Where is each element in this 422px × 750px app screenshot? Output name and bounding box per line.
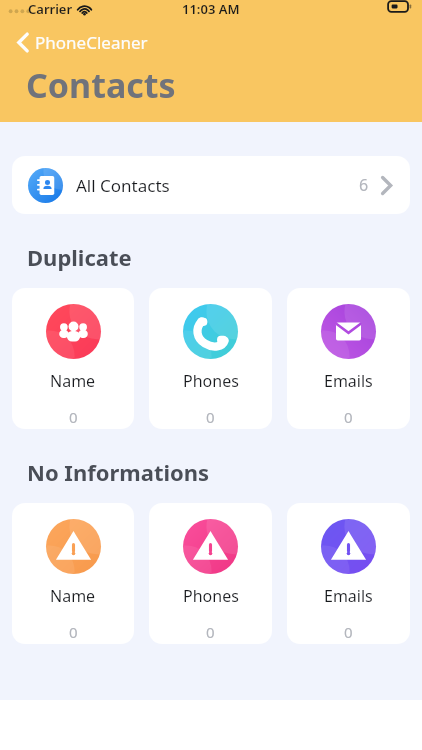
- staticText: 0: [344, 407, 353, 427]
- button[interactable]: Phones: [149, 503, 272, 644]
- staticText: 11:03 AM: [182, 0, 240, 18]
- staticText: PhoneCleaner: [35, 31, 148, 54]
- button[interactable]: Emails: [287, 288, 410, 429]
- staticText: All Contacts: [76, 174, 170, 197]
- staticText: Phones: [183, 585, 239, 607]
- staticText: 0: [206, 622, 215, 642]
- staticText: 6: [359, 174, 369, 196]
- button[interactable]: Name: [12, 288, 134, 429]
- button[interactable]: Name: [12, 503, 134, 644]
- button[interactable]: All Contacts: [12, 156, 410, 214]
- button[interactable]: Back to PhoneCleaner: [12, 29, 152, 56]
- staticText: 0: [69, 407, 78, 427]
- staticText: Name: [50, 585, 96, 607]
- button[interactable]: Phones: [149, 288, 272, 429]
- staticText: Phones: [183, 370, 239, 392]
- staticText: Emails: [324, 585, 373, 607]
- staticText: Emails: [324, 370, 373, 392]
- staticText: Contacts: [26, 62, 176, 108]
- staticText: Name: [50, 370, 96, 392]
- staticText: No Informations: [27, 457, 210, 487]
- staticText: 0: [206, 407, 215, 427]
- staticText: 0: [344, 622, 353, 642]
- staticText: 0: [69, 622, 78, 642]
- staticText: Duplicate: [27, 242, 132, 272]
- button[interactable]: Emails: [287, 503, 410, 644]
- staticText: Carrier: [28, 0, 73, 18]
